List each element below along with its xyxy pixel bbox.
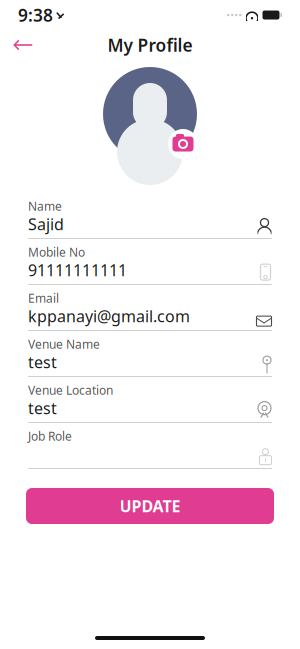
staticText: test	[28, 351, 57, 373]
staticText: Name	[28, 198, 62, 214]
button[interactable]: Back	[6, 32, 40, 58]
button[interactable]: Change profile photo	[102, 66, 198, 162]
staticText: Mobile No	[28, 244, 85, 260]
staticText: UPDATE	[119, 495, 180, 517]
staticText: 91111111111	[28, 259, 127, 281]
staticText: Venue Name	[28, 336, 100, 352]
staticText: Venue Location	[28, 382, 113, 398]
button[interactable]: UPDATE	[26, 488, 274, 524]
staticText: 9:38	[18, 3, 53, 26]
staticText: Sajid	[28, 213, 64, 235]
staticText: kppanayi@gmail.com	[28, 305, 190, 327]
staticText: Email	[28, 290, 59, 306]
staticText: test	[28, 397, 57, 419]
staticText: Job Role	[28, 428, 72, 444]
staticText: My Profile	[107, 33, 192, 56]
